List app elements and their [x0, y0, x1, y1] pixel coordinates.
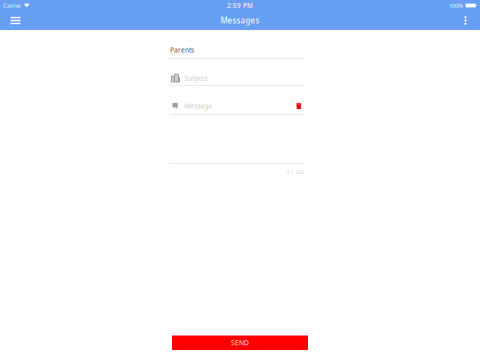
- staticText: Messages: [220, 15, 259, 26]
- button[interactable]: SEND: [172, 335, 308, 350]
- button[interactable]: More options: [454, 12, 477, 29]
- staticText: Parents: [170, 45, 194, 55]
- staticText: 0 / 200: [286, 168, 304, 176]
- staticText: Message: [184, 101, 212, 111]
- button[interactable]: Menu: [3, 11, 28, 30]
- staticText: Subject: [184, 74, 207, 83]
- staticText: 100%: [449, 1, 463, 10]
- staticText: Carrier: [3, 1, 21, 10]
- staticText: SEND: [231, 338, 249, 347]
- staticText: 2:59 PM: [227, 1, 253, 10]
